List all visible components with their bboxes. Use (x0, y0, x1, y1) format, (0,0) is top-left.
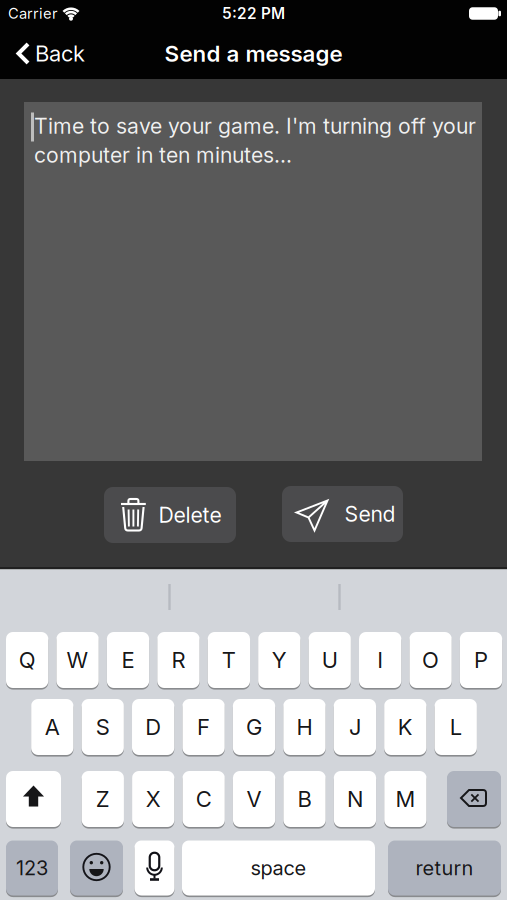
button[interactable]: N (334, 770, 376, 828)
button[interactable]: Emoji (70, 839, 123, 896)
button[interactable]: D (132, 698, 174, 756)
staticText: 5:22 PM (222, 4, 285, 23)
staticText: C (196, 786, 212, 812)
button[interactable]: C (182, 770, 225, 828)
staticText: R (171, 647, 185, 673)
staticText: K (398, 714, 413, 740)
button[interactable]: Shift (6, 770, 61, 828)
button[interactable]: W (56, 631, 99, 689)
button[interactable]: M (384, 770, 426, 828)
staticText: Time to save your game. I'm turning off … (34, 113, 476, 139)
button[interactable]: X (132, 770, 174, 828)
staticText: S (96, 714, 110, 740)
staticText: Delete (158, 502, 221, 528)
button[interactable]: R (157, 631, 200, 689)
button[interactable]: T (208, 631, 250, 689)
button[interactable]: U (309, 631, 351, 689)
staticText: A (45, 714, 60, 740)
staticText: J (349, 714, 361, 740)
staticText: Z (96, 786, 110, 812)
staticText: B (297, 786, 311, 812)
staticText: U (322, 647, 338, 673)
staticText: Y (272, 647, 287, 673)
staticText: Carrier (8, 5, 58, 22)
button[interactable]: S (82, 698, 124, 756)
button[interactable]: Delete (104, 487, 236, 543)
staticText: W (67, 647, 89, 673)
button[interactable]: A (31, 698, 73, 756)
button[interactable]: B (283, 770, 326, 828)
staticText: Send a message (164, 40, 342, 67)
button[interactable]: Delete (447, 770, 501, 828)
staticText: M (395, 786, 415, 812)
button[interactable]: J (334, 698, 376, 756)
staticText: P (474, 647, 488, 673)
button[interactable]: space (182, 839, 375, 896)
staticText: space (250, 856, 306, 880)
button[interactable]: Z (82, 770, 124, 828)
staticText: O (422, 647, 439, 673)
button[interactable]: Y (258, 631, 300, 689)
staticText: T (222, 647, 236, 673)
staticText: G (246, 714, 262, 740)
staticText: L (450, 714, 462, 740)
button[interactable]: L (435, 698, 477, 756)
button[interactable]: Send (282, 486, 403, 542)
staticText: I (377, 647, 383, 673)
staticText: F (197, 714, 210, 740)
button[interactable]: O (409, 631, 452, 689)
button[interactable]: return (388, 839, 501, 896)
staticText: 123 (16, 856, 48, 880)
button[interactable]: Q (6, 631, 48, 689)
button[interactable]: E (107, 631, 149, 689)
button[interactable]: P (460, 631, 502, 689)
staticText: E (121, 647, 134, 673)
staticText: D (145, 714, 161, 740)
button[interactable]: V (233, 770, 275, 828)
button[interactable]: K (384, 698, 426, 756)
button[interactable]: Back (16, 35, 94, 72)
staticText: Send (344, 501, 395, 527)
staticText: Q (19, 647, 36, 673)
staticText: H (296, 714, 312, 740)
button[interactable]: G (233, 698, 275, 756)
button[interactable]: I (359, 631, 401, 689)
staticText: N (347, 786, 363, 812)
staticText: computer in ten minutes... (34, 142, 292, 168)
button[interactable]: Dictate (134, 839, 174, 896)
staticText: X (146, 786, 161, 812)
staticText: V (247, 786, 262, 812)
staticText: Back (35, 40, 85, 67)
button[interactable]: H (283, 698, 326, 756)
staticText: return (415, 856, 473, 880)
button[interactable]: Numbers (6, 839, 58, 896)
button[interactable]: F (182, 698, 225, 756)
